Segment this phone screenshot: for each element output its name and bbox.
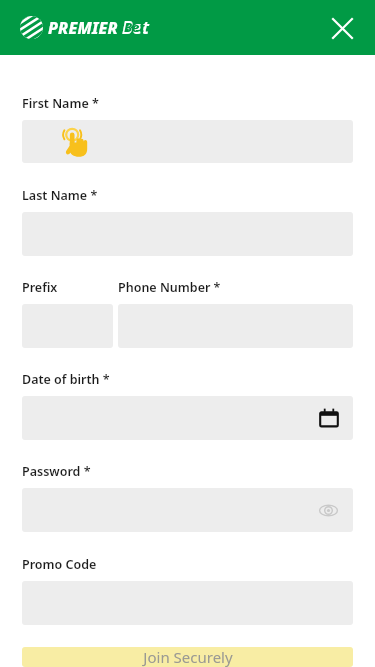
staticText: First Name * — [22, 95, 99, 112]
staticText: Phone Number * — [118, 279, 221, 296]
staticText: Password * — [22, 463, 91, 480]
staticText: Join Securely — [143, 647, 233, 667]
button[interactable]: Pick date — [319, 408, 339, 428]
button[interactable] — [22, 120, 353, 163]
button[interactable]: Premier Bet — [20, 16, 149, 39]
button[interactable]: Pick date — [22, 396, 353, 440]
button[interactable]: Close — [323, 9, 361, 47]
staticText: Promo Code — [22, 556, 97, 573]
button[interactable]: Show password — [319, 501, 338, 520]
staticText: Last Name * — [22, 187, 98, 204]
staticText: Bet — [124, 18, 145, 36]
button[interactable]: Join Securely — [22, 647, 353, 667]
staticText: PREMIER — [48, 17, 118, 39]
staticText: Bet — [122, 16, 149, 39]
staticText: Date of birth * — [22, 371, 110, 388]
staticText: Prefix — [22, 279, 58, 296]
